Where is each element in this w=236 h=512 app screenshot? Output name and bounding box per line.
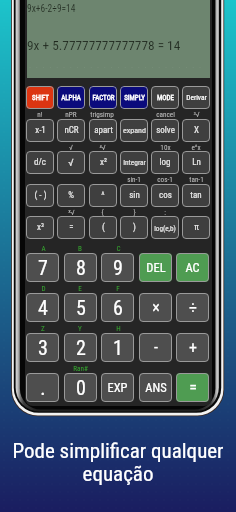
staticText: 3 [38, 336, 48, 359]
button[interactable]: nCR [57, 119, 85, 142]
staticText: x³ [37, 222, 44, 233]
staticText: - [154, 338, 158, 357]
button[interactable]: log [151, 151, 179, 174]
staticText: SHIFT [32, 94, 49, 102]
button[interactable]: 3 [26, 333, 59, 362]
staticText: Integrar [123, 158, 146, 167]
button[interactable]: solve [151, 119, 179, 142]
button[interactable]: 4 [26, 293, 59, 322]
button[interactable]: AC [176, 253, 209, 282]
button[interactable]: π [182, 216, 210, 239]
staticText: nPR [65, 110, 77, 118]
button[interactable]: Derivar [182, 86, 210, 109]
button[interactable]: tan [182, 184, 210, 207]
staticText: apart [94, 125, 113, 136]
button[interactable]: SIMPLY [120, 86, 148, 109]
button[interactable]: 8 [64, 253, 97, 282]
button[interactable]: x-1 [26, 119, 54, 142]
button[interactable]: ÷ [176, 293, 209, 322]
staticText: ANS [145, 380, 167, 395]
staticText: Ln [192, 157, 201, 168]
button[interactable]: ) [120, 216, 148, 239]
staticText: E [78, 284, 82, 292]
button[interactable]: - [139, 333, 172, 362]
staticText: ( - ) [34, 190, 47, 201]
staticText: Pode simplificar qualquer equação [4, 439, 232, 486]
button[interactable]: log(e,b) [151, 216, 179, 239]
staticText: H [116, 324, 121, 332]
staticText: AC [185, 260, 200, 275]
staticText: 7 [38, 256, 48, 279]
staticText: Y [78, 324, 82, 332]
button[interactable]: expand [120, 119, 148, 142]
staticText: log(e,b) [154, 224, 176, 232]
button[interactable]: SHIFT [26, 86, 54, 109]
button[interactable]: d/c [26, 151, 54, 174]
button[interactable]: = [176, 373, 209, 402]
button[interactable]: DEL [139, 253, 172, 282]
staticText: { [101, 208, 104, 216]
staticText: 9x+6-2÷9=14 [27, 2, 76, 14]
staticText: cos [159, 190, 172, 201]
staticText: 8 [76, 256, 86, 279]
button[interactable]: ( [89, 216, 117, 239]
staticText: 9 [113, 256, 123, 279]
button[interactable]: apart [89, 119, 117, 142]
staticText: ^ [101, 190, 105, 201]
staticText: SIMPLY [124, 94, 145, 102]
button[interactable]: cos [151, 184, 179, 207]
button[interactable]: × [139, 293, 172, 322]
button[interactable]: EXP [101, 373, 134, 402]
staticText: 0 [76, 376, 86, 399]
staticText: log [159, 157, 171, 168]
staticText: trigsimp [90, 110, 114, 118]
staticText: n! [37, 110, 43, 118]
staticText: ( [102, 222, 105, 233]
staticText: x-1 [35, 125, 46, 136]
button[interactable]: sin [120, 184, 148, 207]
staticText: √ [68, 157, 74, 169]
staticText: . [40, 376, 46, 399]
button[interactable]: X [182, 119, 210, 142]
button[interactable]: FACTOR [89, 86, 117, 109]
staticText: DEL [146, 260, 166, 275]
staticText: ³√ [193, 110, 200, 118]
button[interactable]: Ln [182, 151, 210, 174]
button[interactable]: ANS [139, 373, 172, 402]
button[interactable]: x² [89, 151, 117, 174]
staticText: cancel [156, 110, 175, 118]
button[interactable]: 5 [64, 293, 97, 322]
staticText: 2 [76, 336, 86, 359]
staticText: FACTOR [92, 94, 115, 102]
staticText: sin [129, 190, 140, 201]
staticText: solve [156, 125, 175, 136]
staticText: 6 [113, 296, 123, 319]
button[interactable]: + [176, 333, 209, 362]
button[interactable]: 2 [64, 333, 97, 362]
button[interactable]: Integrar [120, 151, 148, 174]
staticText: 4 [38, 296, 48, 319]
staticText: = [189, 378, 197, 397]
staticText: 5 [76, 296, 86, 319]
staticText: = [69, 222, 74, 233]
button[interactable]: 9 [101, 253, 134, 282]
staticText: x² [100, 157, 107, 168]
button[interactable]: ( - ) [26, 184, 54, 207]
button[interactable]: ALPHA [57, 86, 85, 109]
button[interactable]: x³ [26, 216, 54, 239]
staticText: π [194, 222, 199, 233]
staticText: √ [69, 143, 73, 151]
staticText: tan [190, 190, 202, 201]
button[interactable]: % [57, 184, 85, 207]
button[interactable]: 0 [64, 373, 97, 402]
button[interactable]: = [57, 216, 85, 239]
button[interactable]: MODE [151, 86, 179, 109]
button[interactable]: 1 [101, 333, 134, 362]
button[interactable]: 7 [26, 253, 59, 282]
staticText: × [152, 298, 160, 317]
button[interactable]: ^ [89, 184, 117, 207]
button[interactable]: 6 [101, 293, 134, 322]
button[interactable]: √ [57, 151, 85, 174]
staticText: MODE [157, 94, 174, 102]
button[interactable]: . [26, 373, 59, 402]
